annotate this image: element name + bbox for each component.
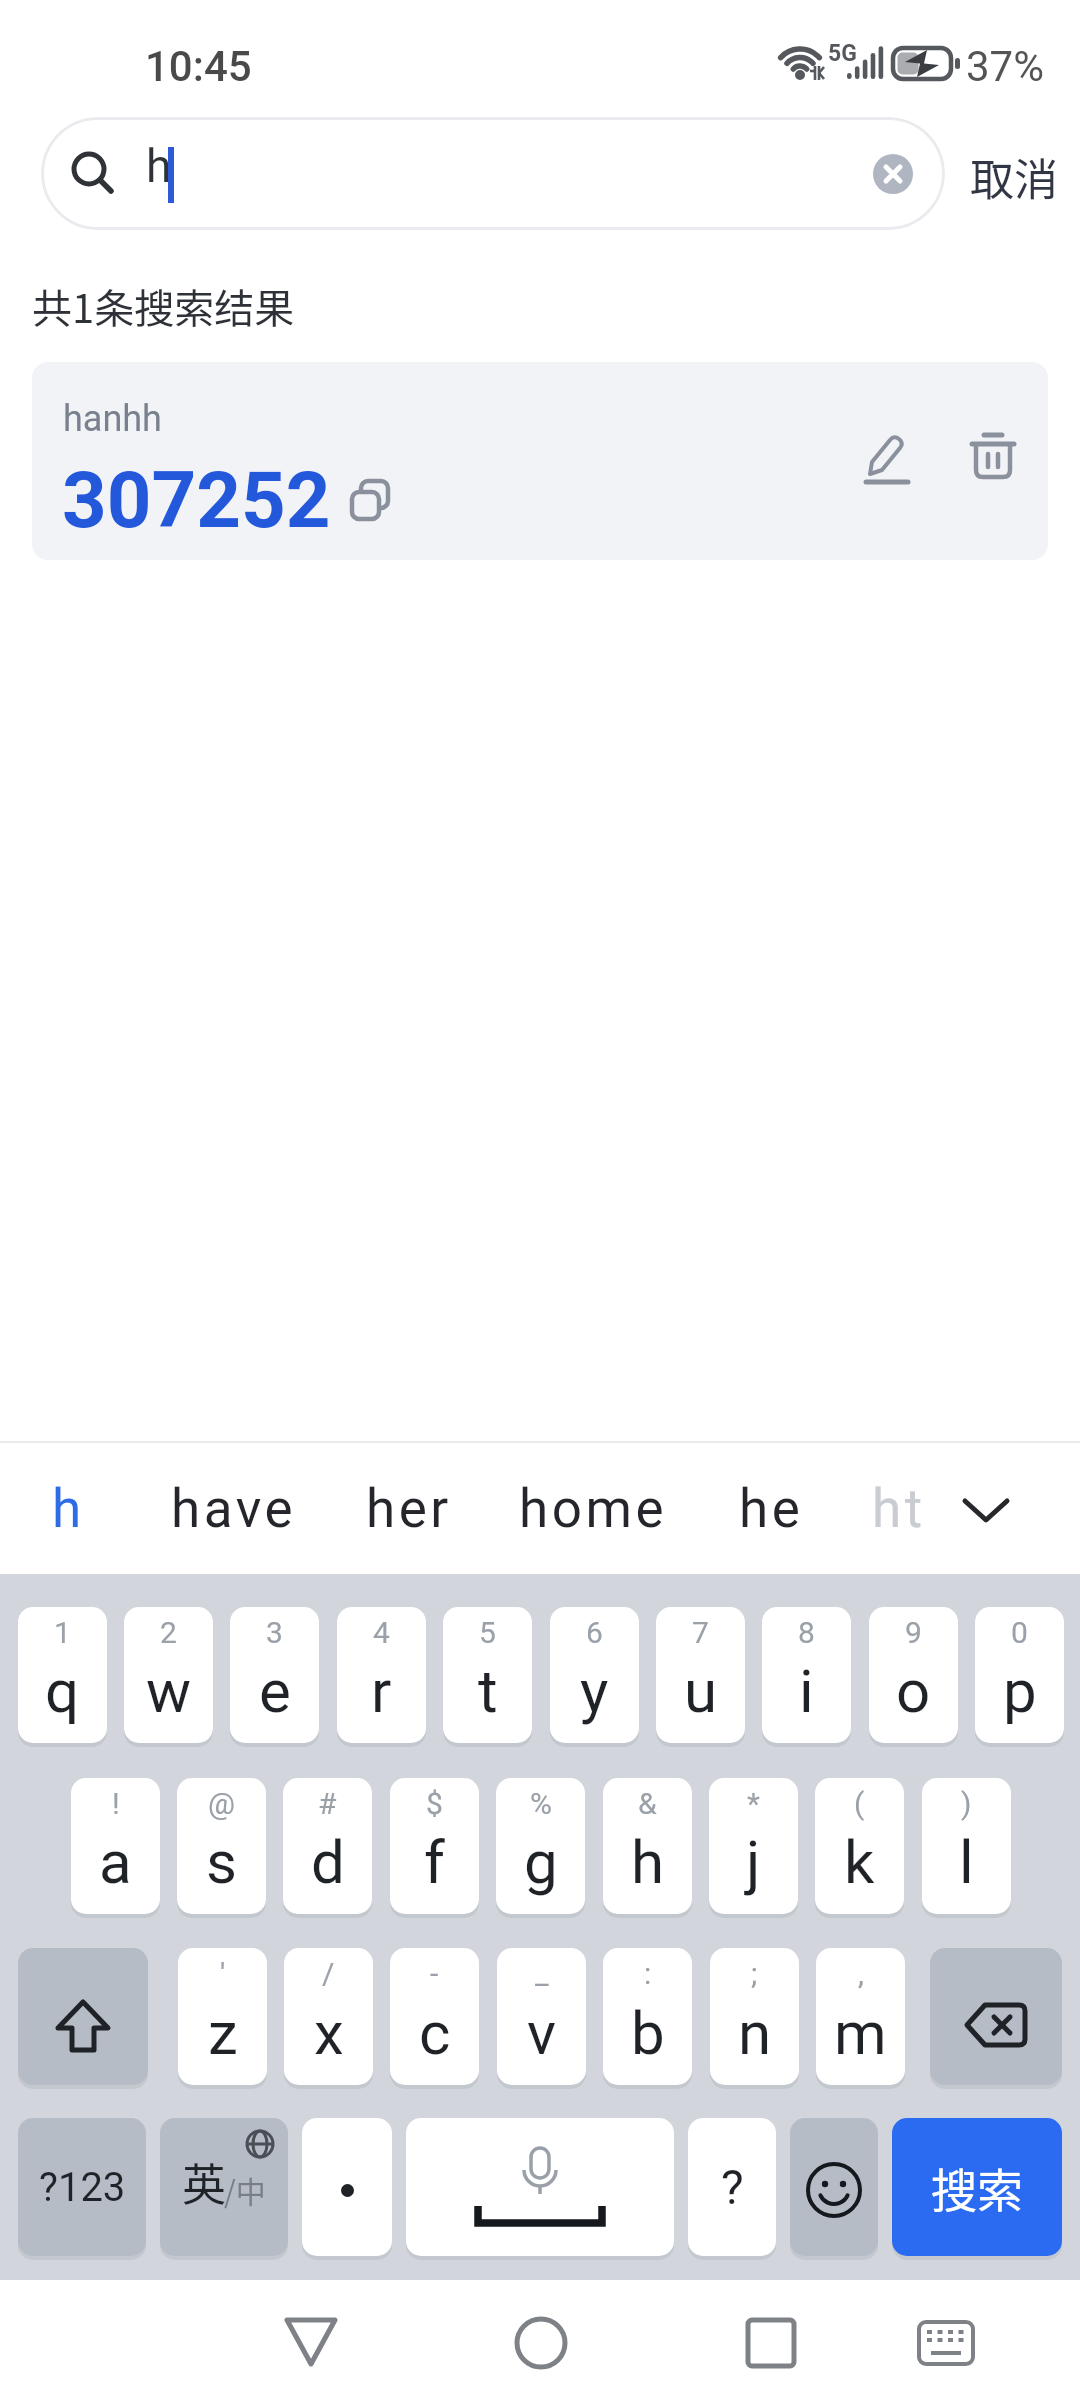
button[interactable]: , bbox=[816, 1948, 905, 2085]
staticText: k bbox=[844, 1827, 875, 1897]
button[interactable]: % bbox=[496, 1778, 585, 1914]
staticText: h bbox=[146, 139, 172, 193]
button[interactable] bbox=[968, 430, 1024, 486]
button[interactable]: 3 bbox=[230, 1607, 319, 1743]
staticText: a bbox=[99, 1827, 132, 1897]
staticText: ?123 bbox=[39, 2164, 126, 2211]
button[interactable]: 搜索 bbox=[892, 2118, 1062, 2256]
button[interactable]: / bbox=[284, 1948, 373, 2085]
staticText: h bbox=[52, 1478, 85, 1540]
button[interactable]: # bbox=[283, 1778, 372, 1914]
button[interactable] bbox=[514, 2316, 568, 2370]
button[interactable]: ! bbox=[71, 1778, 160, 1914]
button[interactable] bbox=[955, 1490, 1019, 1534]
staticText: $ bbox=[426, 1786, 443, 1821]
button[interactable]: 9 bbox=[869, 1607, 958, 1743]
button[interactable]: hanhh bbox=[32, 362, 1048, 560]
staticText: ' bbox=[220, 1956, 226, 1991]
staticText: b bbox=[631, 1998, 665, 2068]
staticText: % bbox=[530, 1786, 552, 1821]
staticText: p bbox=[1003, 1656, 1037, 1726]
button[interactable]: : bbox=[603, 1948, 692, 2085]
button[interactable] bbox=[745, 2317, 797, 2369]
button[interactable]: _ bbox=[497, 1948, 586, 2085]
button[interactable] bbox=[406, 2118, 674, 2256]
button[interactable]: 4 bbox=[337, 1607, 426, 1743]
staticText: 1 bbox=[54, 1615, 71, 1650]
staticText: 搜索 bbox=[931, 2154, 1023, 2221]
button[interactable]: her bbox=[366, 1478, 452, 1540]
staticText: n bbox=[738, 1998, 772, 2068]
staticText: 5 bbox=[479, 1615, 496, 1650]
button[interactable]: 1 bbox=[18, 1607, 107, 1743]
staticText: her bbox=[366, 1478, 452, 1540]
staticText: # bbox=[318, 1786, 337, 1821]
staticText: x bbox=[314, 1998, 344, 2068]
staticText: t bbox=[478, 1656, 498, 1726]
staticText: 6 bbox=[586, 1615, 603, 1650]
button[interactable] bbox=[917, 2320, 975, 2366]
staticText: / bbox=[322, 1956, 335, 1991]
button[interactable] bbox=[18, 1948, 148, 2085]
staticText: 5G bbox=[828, 40, 857, 67]
staticText: 共1条搜索结果 bbox=[32, 277, 295, 335]
staticText: y bbox=[580, 1656, 609, 1726]
staticText: f bbox=[424, 1827, 445, 1897]
button[interactable] bbox=[930, 1948, 1062, 2085]
button[interactable]: 6 bbox=[550, 1607, 639, 1743]
button[interactable]: 2 bbox=[124, 1607, 213, 1743]
staticText: have bbox=[171, 1478, 297, 1540]
staticText: 8 bbox=[798, 1615, 815, 1650]
button[interactable]: 0 bbox=[975, 1607, 1064, 1743]
button[interactable]: ; bbox=[710, 1948, 799, 2085]
button[interactable]: @ bbox=[177, 1778, 266, 1914]
staticText: ) bbox=[961, 1786, 972, 1821]
staticText: ? bbox=[721, 2159, 744, 2215]
button[interactable]: ' bbox=[178, 1948, 267, 2085]
button[interactable]: he bbox=[739, 1478, 804, 1540]
staticText: 3 bbox=[266, 1615, 283, 1650]
button[interactable] bbox=[283, 2316, 339, 2370]
staticText: hanhh bbox=[63, 398, 162, 440]
staticText: 10:45 bbox=[145, 42, 252, 91]
button[interactable]: $ bbox=[390, 1778, 479, 1914]
button[interactable]: ( bbox=[815, 1778, 904, 1914]
staticText: _ bbox=[535, 1956, 549, 1991]
button[interactable] bbox=[873, 154, 913, 194]
button[interactable]: 5 bbox=[443, 1607, 532, 1743]
staticText: - bbox=[430, 1956, 439, 1991]
staticText: h bbox=[631, 1827, 665, 1897]
staticText: v bbox=[527, 1998, 557, 2068]
staticText: , bbox=[858, 1956, 864, 1991]
staticText: 307252 bbox=[62, 455, 331, 546]
staticText: /中 bbox=[224, 2168, 266, 2211]
button[interactable]: have bbox=[171, 1478, 297, 1540]
staticText: ( bbox=[854, 1786, 865, 1821]
button[interactable]: - bbox=[390, 1948, 479, 2085]
staticText: z bbox=[208, 1998, 238, 2068]
staticText: 2 bbox=[160, 1615, 177, 1650]
staticText: 英 bbox=[182, 2150, 226, 2214]
staticText: 取消 bbox=[970, 145, 1058, 209]
staticText: r bbox=[371, 1656, 392, 1726]
staticText: 4 bbox=[373, 1615, 390, 1650]
button[interactable] bbox=[302, 2118, 392, 2256]
staticText: i bbox=[799, 1656, 814, 1726]
button[interactable]: h bbox=[41, 117, 945, 230]
button[interactable]: ht bbox=[872, 1478, 926, 1540]
button[interactable]: 7 bbox=[656, 1607, 745, 1743]
button[interactable]: ? bbox=[688, 2118, 776, 2256]
button[interactable]: home bbox=[519, 1478, 668, 1540]
button[interactable] bbox=[860, 430, 916, 486]
button[interactable]: ?123 bbox=[18, 2118, 146, 2256]
button[interactable]: 8 bbox=[762, 1607, 851, 1743]
button[interactable]: ) bbox=[922, 1778, 1011, 1914]
button[interactable]: 取消 bbox=[970, 145, 1058, 209]
staticText: j bbox=[746, 1827, 761, 1897]
staticText: * bbox=[747, 1786, 760, 1821]
button[interactable]: & bbox=[603, 1778, 692, 1914]
button[interactable]: 英 bbox=[160, 2118, 288, 2256]
button[interactable]: h bbox=[52, 1478, 85, 1540]
button[interactable]: * bbox=[709, 1778, 798, 1914]
button[interactable] bbox=[790, 2118, 878, 2256]
